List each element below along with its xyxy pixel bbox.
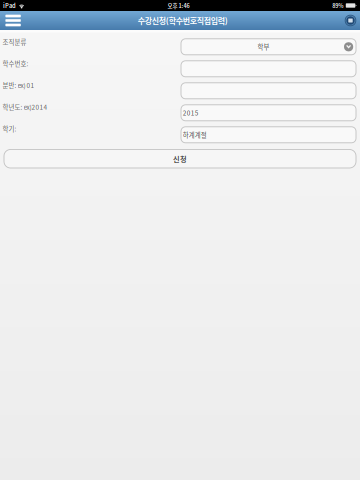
staticText: 2015 bbox=[183, 108, 199, 117]
staticText: 학년도: ex)2014 bbox=[2, 102, 47, 112]
staticText: iPad bbox=[3, 1, 16, 10]
staticText: 분반: ex) 01 bbox=[2, 81, 34, 90]
staticText: 학수번호: bbox=[2, 59, 28, 68]
staticText: 수강신청(학수번호직접입력) bbox=[138, 15, 228, 26]
staticText: 신청 bbox=[173, 153, 187, 164]
button[interactable]: Display options bbox=[342, 11, 359, 30]
button[interactable]: Menu bbox=[3, 11, 24, 30]
staticText: 오후 1:46 bbox=[167, 1, 189, 9]
staticText: 하계계절 bbox=[183, 130, 207, 139]
staticText: 학기: bbox=[2, 124, 16, 133]
staticText: 조직분류 bbox=[2, 37, 26, 46]
staticText: 학부 bbox=[257, 42, 269, 51]
staticText: 89% bbox=[332, 1, 343, 9]
button[interactable]: 신청 bbox=[4, 149, 356, 168]
